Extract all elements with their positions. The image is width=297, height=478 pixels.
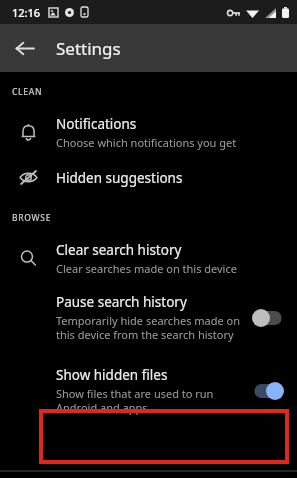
staticText: Temporarily hide searches made on this d… xyxy=(56,313,245,342)
staticText: Clear search history xyxy=(56,241,182,259)
button[interactable]: Back xyxy=(0,24,48,72)
staticText: Settings xyxy=(56,37,121,60)
staticText: CLEAN xyxy=(12,86,43,98)
staticText: Notifications xyxy=(56,115,137,133)
staticText: Show files that are used to run Android … xyxy=(56,386,245,415)
staticText: 12:16 xyxy=(12,5,41,20)
staticText: Show hidden files xyxy=(56,366,168,384)
button[interactable]: Off xyxy=(251,308,285,328)
button[interactable]: Hidden suggestions xyxy=(0,159,297,196)
button[interactable]: On xyxy=(251,381,285,401)
button[interactable]: Clear search history xyxy=(0,232,297,285)
button[interactable]: Notifications xyxy=(0,106,297,159)
staticText: Hidden suggestions xyxy=(56,169,183,187)
button[interactable]: Pause search history xyxy=(0,285,297,350)
staticText: Clear searches made on this device xyxy=(56,261,237,276)
staticText: BROWSE xyxy=(12,212,52,224)
staticText: Choose which notifications you get xyxy=(56,135,237,150)
button[interactable]: Show hidden files xyxy=(0,358,297,423)
staticText: Pause search history xyxy=(56,293,187,311)
